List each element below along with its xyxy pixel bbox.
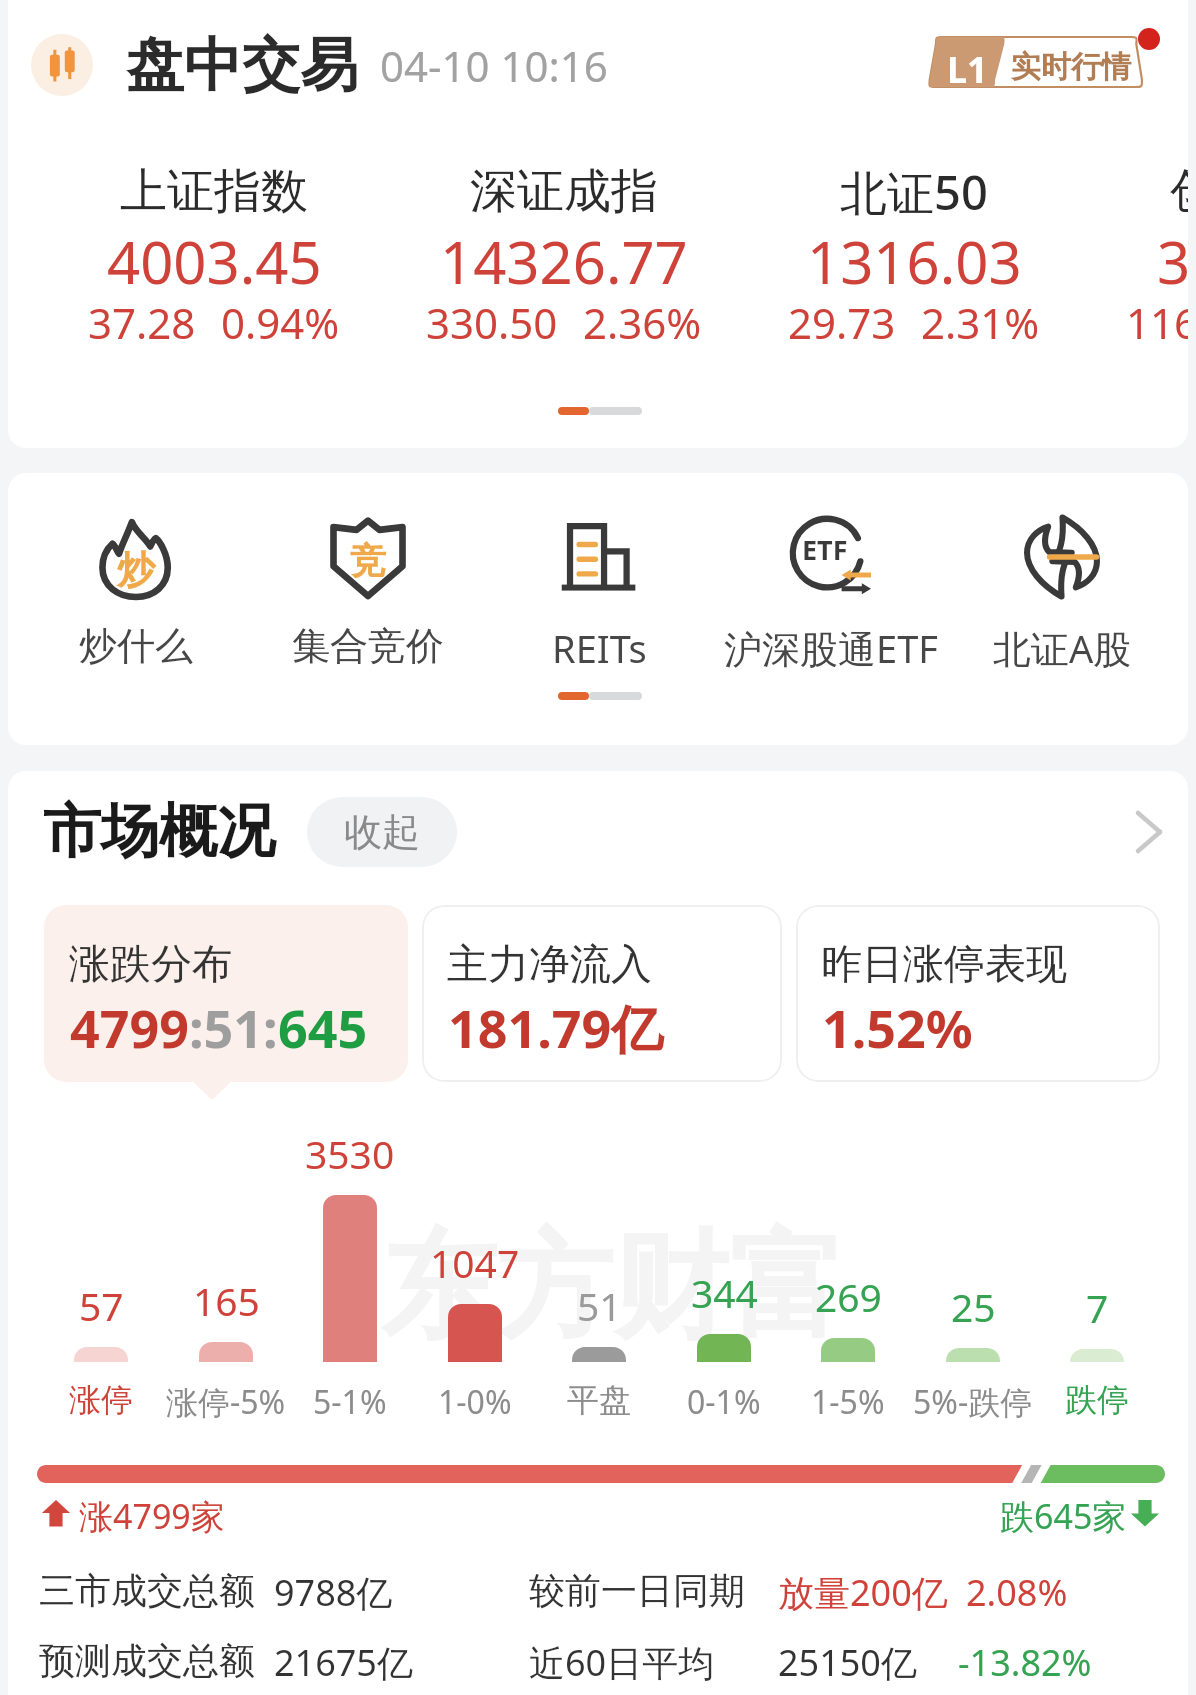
staticText: 04-10 10:16 xyxy=(380,37,608,94)
staticText: 2.36% xyxy=(583,294,702,350)
button[interactable]: 北证50 xyxy=(739,160,1089,350)
staticText: 深证成指 xyxy=(470,162,658,221)
staticText: 0-1% xyxy=(687,1380,761,1424)
staticText: 25 xyxy=(951,1280,996,1333)
staticText: 平盘 xyxy=(567,1380,631,1420)
staticText: 645 xyxy=(278,992,368,1063)
button[interactable]: 344 xyxy=(662,1260,786,1415)
staticText: 21675亿 xyxy=(274,1638,413,1687)
staticText: 25150亿 xyxy=(778,1638,917,1687)
staticText: 北证A股 xyxy=(993,622,1132,674)
staticText: 1-0% xyxy=(438,1380,512,1424)
staticText: 57 xyxy=(79,1279,124,1332)
staticText: 炒什么 xyxy=(79,622,193,670)
staticText: 收起 xyxy=(344,808,420,856)
staticText: 269 xyxy=(815,1270,882,1323)
staticText: 165 xyxy=(193,1274,260,1327)
button[interactable]: REITs xyxy=(483,511,715,674)
button[interactable]: 7 xyxy=(1035,1275,1159,1415)
staticText: 昨日涨停表现 xyxy=(821,939,1067,991)
button[interactable]: 北证A股 xyxy=(946,511,1178,674)
staticText: 上证指数 xyxy=(120,162,308,221)
staticText: 涨停 xyxy=(69,1380,133,1420)
button[interactable]: L1 xyxy=(929,37,1163,97)
staticText: 344 xyxy=(691,1266,758,1319)
button[interactable]: 25 xyxy=(911,1274,1035,1415)
button[interactable]: 竞 xyxy=(252,511,484,670)
staticText: 北证50 xyxy=(840,160,988,222)
staticText: 4799 xyxy=(70,992,189,1063)
staticText: 沪深股通ETF xyxy=(724,622,938,674)
staticText: 集合竞价 xyxy=(292,622,444,670)
staticText: 近60日平均 xyxy=(529,1638,715,1687)
staticText: 2.08% xyxy=(966,1568,1068,1617)
staticText: 1-5% xyxy=(811,1380,885,1424)
staticText: 实时行情 xyxy=(1011,48,1131,86)
staticText: 三市成交总额 xyxy=(39,1568,255,1613)
staticText: 7 xyxy=(1086,1281,1109,1334)
staticText: 330.50 xyxy=(426,294,558,350)
staticText: 5%-跌停 xyxy=(913,1380,1033,1424)
staticText: :51: xyxy=(189,992,278,1063)
button[interactable]: 51 xyxy=(537,1273,661,1415)
staticText: 5-1% xyxy=(313,1380,387,1424)
staticText: 盘中交易 xyxy=(126,29,358,102)
staticText: 14326.77 xyxy=(440,222,688,294)
button[interactable]: 炒 xyxy=(20,511,252,670)
staticText: 51 xyxy=(577,1279,622,1332)
button[interactable]: ETF xyxy=(715,511,947,674)
staticText: REITs xyxy=(552,622,647,674)
staticText: 跌停 xyxy=(1065,1380,1129,1420)
staticText: 东方财富 xyxy=(381,1214,845,1360)
button[interactable]: 165 xyxy=(164,1268,288,1415)
staticText: -13.82% xyxy=(958,1638,1092,1687)
staticText: 3530 xyxy=(305,1127,395,1180)
button[interactable]: 深证成指 xyxy=(389,160,739,350)
button[interactable]: 1047 xyxy=(413,1230,537,1415)
button[interactable]: 昨日涨停表现 xyxy=(796,905,1160,1082)
staticText: 29.73 xyxy=(788,294,896,350)
staticText: 跌645家 xyxy=(1000,1493,1127,1537)
staticText: 创业板指 xyxy=(1170,162,1188,221)
button[interactable]: 主力净流入 xyxy=(422,905,782,1082)
staticText: 放量200亿 xyxy=(778,1568,948,1617)
staticText: 1.52% xyxy=(822,992,973,1063)
staticText: 0.94% xyxy=(221,294,340,350)
staticText: 主力净流入 xyxy=(447,939,652,991)
staticText: 涨停-5% xyxy=(166,1380,286,1424)
staticText: 市场概况 xyxy=(43,795,275,868)
staticText: 竞 xyxy=(350,538,386,583)
staticText: 116.30 xyxy=(1126,294,1188,350)
staticText: 3289.45 xyxy=(1157,222,1188,294)
button[interactable]: 269 xyxy=(786,1264,910,1415)
staticText: 涨4799家 xyxy=(79,1493,225,1537)
staticText: L1 xyxy=(947,45,988,94)
button[interactable]: 涨跌分布 xyxy=(44,905,408,1082)
staticText: 预测成交总额 xyxy=(39,1638,255,1683)
staticText: 涨跌分布 xyxy=(69,939,233,991)
staticText: ETF xyxy=(802,531,848,568)
staticText: 9788亿 xyxy=(274,1568,393,1617)
staticText: 181.79亿 xyxy=(448,992,664,1063)
staticText: 较前一日同期 xyxy=(529,1568,745,1613)
staticText: 37.28 xyxy=(88,294,196,350)
staticText: 1047 xyxy=(430,1236,520,1289)
button[interactable]: 上证指数 xyxy=(39,160,389,350)
staticText: 2.31% xyxy=(921,294,1040,350)
button[interactable]: 收起 xyxy=(307,797,457,867)
button[interactable]: 3530 xyxy=(288,1121,412,1415)
button[interactable]: 展开市场概况 xyxy=(1128,805,1168,859)
button[interactable]: 创业板指 xyxy=(1089,160,1188,350)
staticText: 炒 xyxy=(117,546,155,594)
staticText: 4003.45 xyxy=(107,222,322,294)
button[interactable]: 57 xyxy=(39,1273,163,1415)
staticText: 1316.03 xyxy=(807,222,1022,294)
